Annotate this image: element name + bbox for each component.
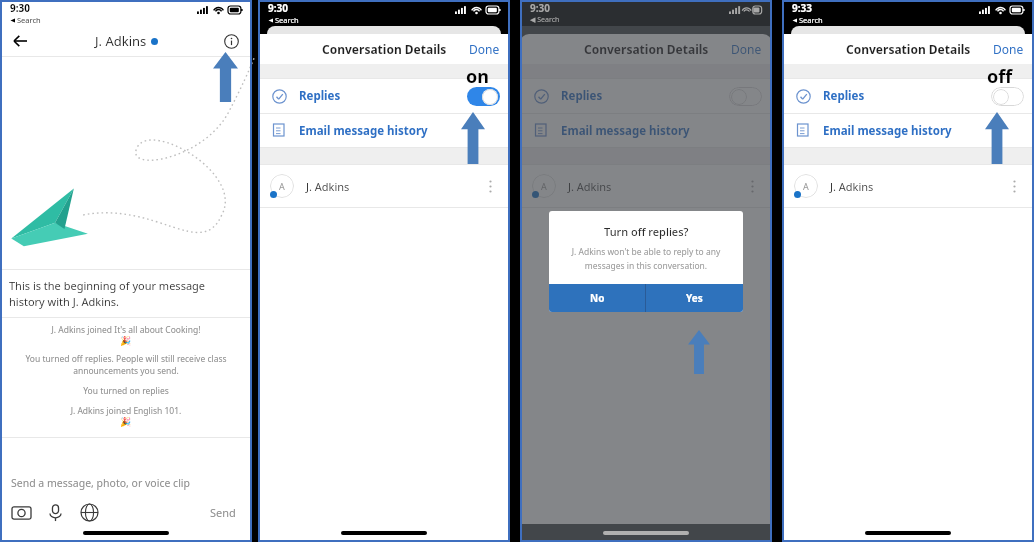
staticText: Replies (561, 88, 603, 104)
staticText: 🎉 (120, 336, 132, 347)
staticText: You turned on replies (14, 385, 238, 397)
staticText: Email message history (561, 123, 690, 139)
button[interactable]: Yes (646, 284, 743, 312)
staticText: J. Adkins (306, 179, 350, 194)
button[interactable]: Replies toggle (991, 87, 1024, 106)
staticText: Done (993, 41, 1024, 57)
staticText: You turned off replies. People will stil… (14, 353, 238, 377)
button[interactable]: Details (220, 30, 242, 52)
button[interactable]: Done (993, 41, 1024, 57)
staticText: A (803, 180, 809, 192)
staticText: 9:30 (10, 1, 30, 15)
button[interactable]: Voice message (46, 503, 65, 522)
staticText: Send (210, 505, 236, 520)
staticText: Replies (823, 88, 865, 104)
staticText: on (466, 64, 489, 89)
button[interactable]: Web (80, 503, 99, 522)
staticText: J. Adkins joined It's all about Cooking! (14, 324, 238, 336)
staticText: Conversation Details (584, 41, 709, 57)
button[interactable]: Camera (12, 503, 31, 522)
staticText: Conversation Details (846, 41, 971, 57)
button[interactable]: More options (1006, 178, 1022, 194)
staticText: off (987, 64, 1013, 89)
button[interactable]: A (782, 165, 1034, 207)
staticText: Turn off replies? (604, 224, 689, 239)
staticText: Yes (686, 291, 703, 305)
button[interactable]: More options (744, 178, 760, 194)
button[interactable]: More options (482, 178, 498, 194)
staticText: J. Adkins (568, 179, 612, 194)
staticText: Done (469, 41, 500, 57)
staticText: Search (799, 15, 823, 25)
button[interactable]: Send (206, 501, 240, 524)
staticText: A (279, 180, 285, 192)
button[interactable]: Email message history (782, 114, 1034, 147)
staticText: 🎉 (120, 417, 132, 428)
button[interactable]: Done (469, 41, 500, 57)
staticText: 9:30 (268, 1, 288, 15)
staticText: J. Adkins (830, 179, 874, 194)
staticText: J. Adkins (95, 32, 147, 50)
staticText: Replies (299, 88, 341, 104)
button[interactable]: Back (8, 29, 32, 53)
staticText: Conversation Details (322, 41, 447, 57)
button[interactable]: No (549, 284, 645, 312)
staticText: This is the beginning of your message hi… (9, 278, 243, 309)
staticText: Search (275, 15, 299, 25)
staticText: Email message history (299, 123, 428, 139)
button[interactable]: Replies toggle (729, 87, 762, 106)
button[interactable]: A (258, 165, 510, 207)
button[interactable]: Replies toggle (467, 87, 500, 106)
staticText: Search (17, 15, 41, 25)
button[interactable]: Email message history (258, 114, 510, 147)
staticText: 9:33 (792, 1, 812, 15)
staticText: Email message history (823, 123, 952, 139)
button[interactable]: A (520, 165, 772, 207)
staticText: A (541, 180, 547, 192)
staticText: 9:30 (530, 1, 550, 15)
staticText: Send a message, photo, or voice clip (11, 476, 191, 490)
staticText: ◀ Search (530, 15, 560, 25)
staticText: Done (731, 41, 762, 57)
button[interactable]: Email message history (520, 114, 772, 147)
staticText: J. Adkins joined English 101. (14, 405, 238, 417)
button[interactable]: Replies (782, 79, 1034, 113)
staticText: No (590, 291, 605, 305)
button[interactable]: Done (731, 41, 762, 57)
staticText: J. Adkins won't be able to reply to any … (563, 246, 729, 271)
button[interactable]: Replies (520, 79, 772, 113)
button[interactable]: Replies (258, 79, 510, 113)
